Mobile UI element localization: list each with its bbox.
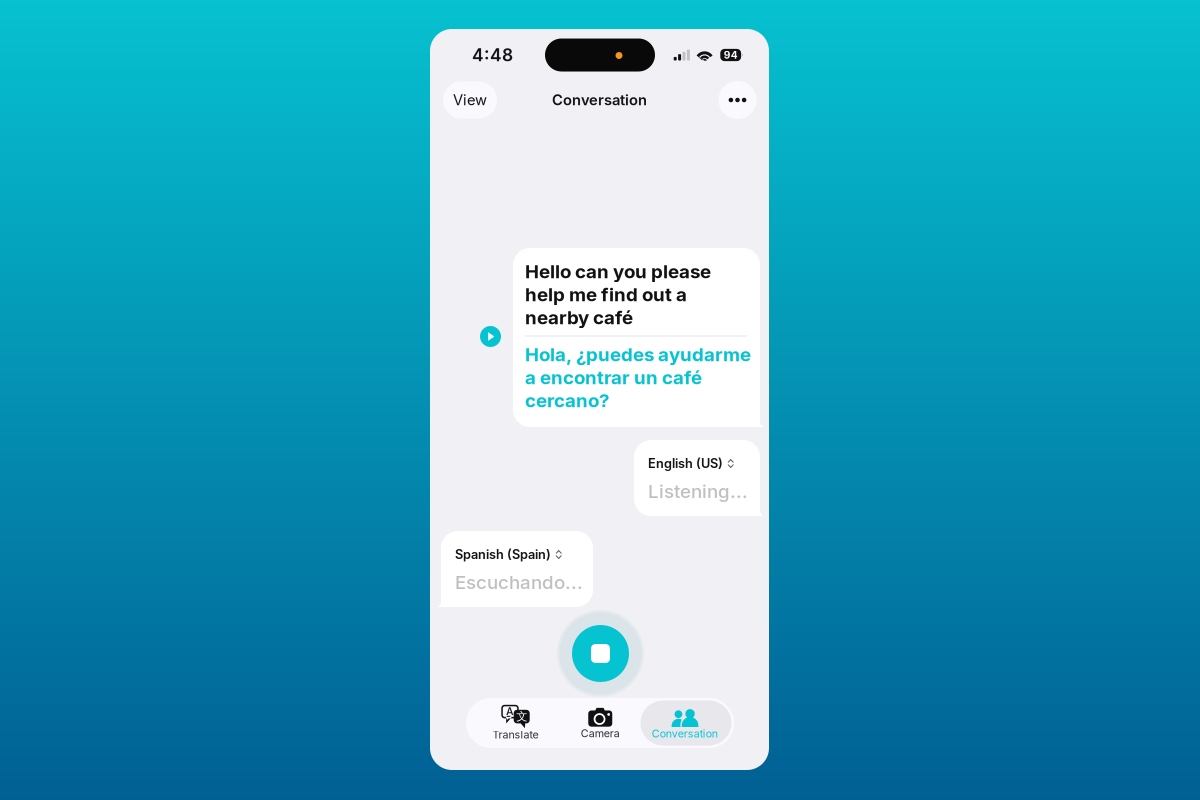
- button[interactable]: A: [466, 698, 565, 748]
- staticText: 94: [724, 49, 738, 61]
- button[interactable]: More options: [718, 81, 756, 119]
- button[interactable]: Camera: [565, 698, 635, 748]
- staticText: Spanish (Spain): [455, 547, 551, 562]
- staticText: Conversation: [652, 727, 718, 740]
- staticText: cercano?: [525, 389, 609, 412]
- button[interactable]: Conversation: [635, 698, 734, 748]
- staticText: A: [506, 705, 514, 718]
- button[interactable]: View: [443, 81, 497, 118]
- staticText: Listening...: [648, 480, 748, 503]
- staticText: English (US): [648, 456, 723, 471]
- staticText: Escuchando...: [455, 571, 583, 594]
- staticText: Camera: [581, 727, 620, 740]
- button[interactable]: Stop recording: [556, 609, 645, 698]
- staticText: Conversation: [552, 91, 647, 109]
- staticText: View: [453, 91, 487, 109]
- staticText: help me find out a: [525, 283, 687, 306]
- staticText: a encontrar un café: [525, 366, 702, 389]
- staticText: 文: [516, 709, 527, 724]
- staticText: 4:48: [472, 44, 513, 65]
- staticText: nearby café: [525, 306, 633, 329]
- staticText: Hello can you please: [525, 260, 711, 283]
- staticText: Hola, ¿puedes ayudarme: [525, 343, 751, 366]
- staticText: Translate: [492, 728, 538, 741]
